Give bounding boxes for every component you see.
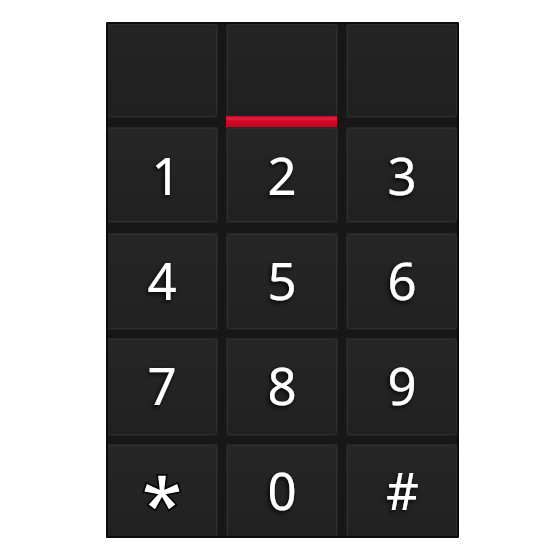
button[interactable]: Display [106, 23, 218, 118]
button[interactable]: Key 6 [346, 233, 458, 330]
staticText: 1 [151, 140, 181, 209]
button[interactable]: Key 3 [346, 127, 458, 223]
button[interactable]: Key 7 [106, 338, 218, 436]
button[interactable]: Key 9 [346, 338, 458, 436]
staticText: 6 [387, 245, 417, 314]
button[interactable]: Key 1 [106, 127, 218, 223]
staticText: 2 [267, 140, 297, 209]
button[interactable]: Display [226, 23, 338, 118]
button[interactable]: Key * [106, 444, 218, 538]
staticText: 7 [147, 350, 177, 419]
staticText: 0 [267, 455, 297, 524]
button[interactable]: Display [346, 23, 458, 118]
button[interactable]: Key # [346, 444, 458, 538]
staticText: 5 [267, 245, 297, 314]
staticText: 9 [387, 350, 417, 419]
button[interactable]: Key 5 [226, 233, 338, 330]
button[interactable]: Key 0 [226, 444, 338, 538]
staticText: 8 [267, 350, 297, 419]
button[interactable]: Key 8 [226, 338, 338, 436]
staticText: # [386, 455, 419, 524]
button[interactable]: Key 4 [106, 233, 218, 330]
staticText: 4 [147, 245, 177, 314]
button[interactable]: Key 2 [226, 127, 338, 223]
staticText: 3 [387, 140, 417, 209]
